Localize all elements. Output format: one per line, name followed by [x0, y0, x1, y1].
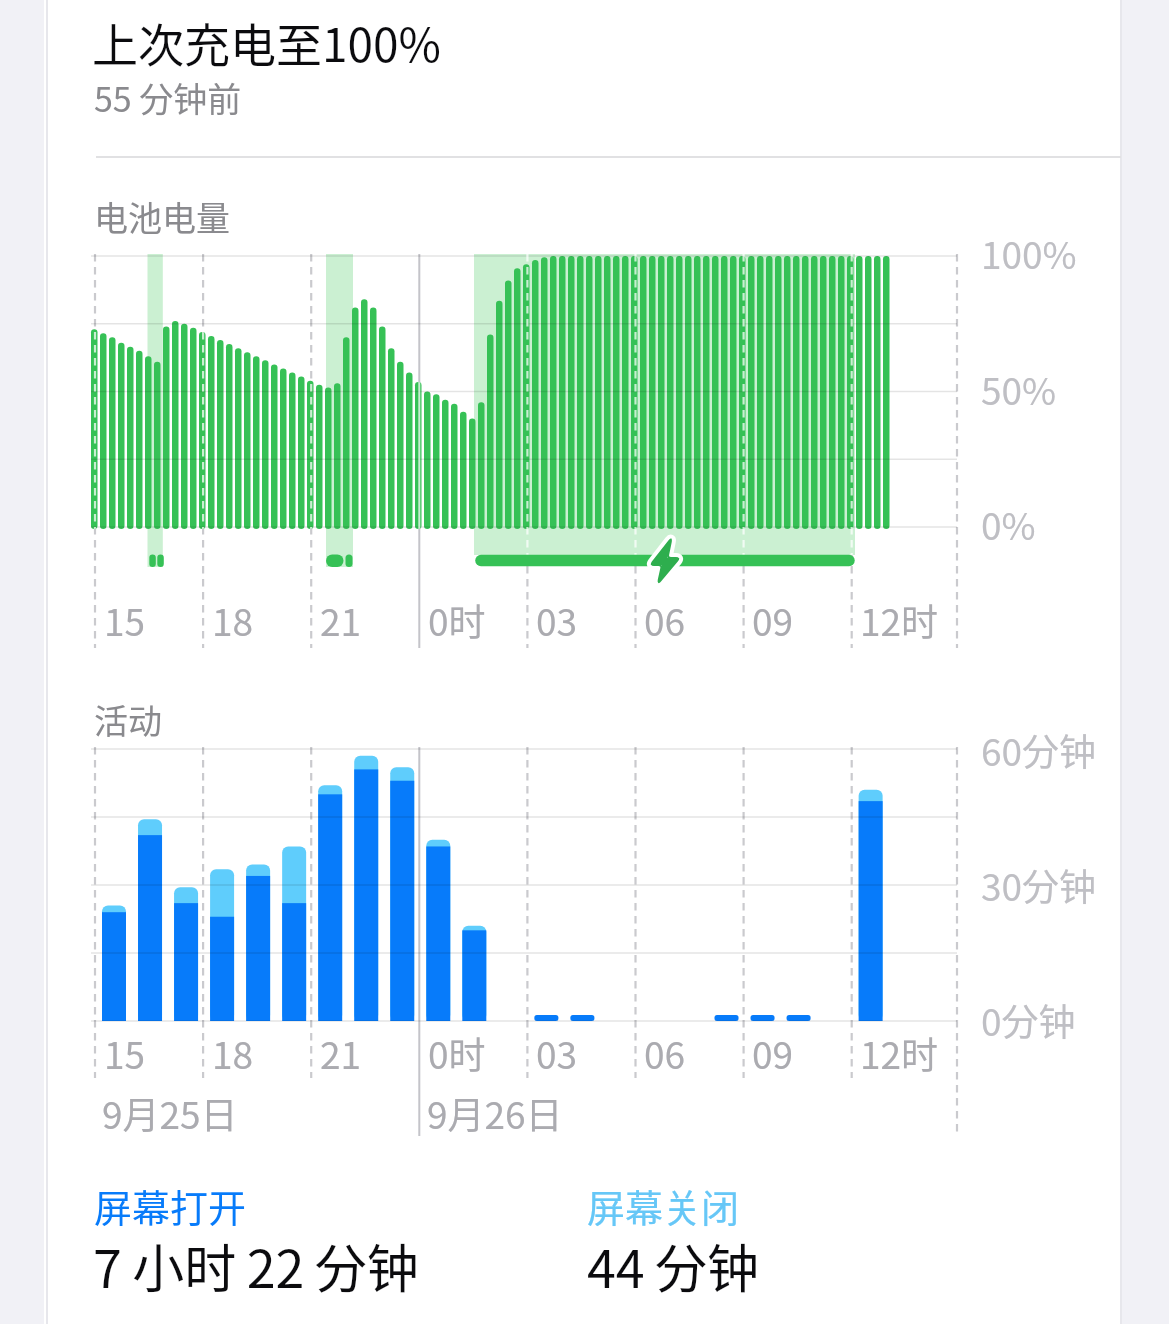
staticText: 18: [212, 593, 254, 647]
staticText: 9月25日: [102, 1086, 238, 1140]
staticText: 03: [536, 593, 578, 647]
staticText: 100%: [981, 226, 1077, 280]
staticText: 55 分钟前: [94, 73, 242, 122]
staticText: 活动: [94, 695, 162, 744]
staticText: 06: [644, 593, 686, 647]
staticText: 50%: [981, 362, 1057, 416]
staticText: 0分钟: [981, 993, 1076, 1047]
button[interactable]: 屏幕关闭: [587, 1178, 740, 1233]
staticText: 06: [644, 1026, 686, 1080]
staticText: 21: [320, 593, 362, 647]
staticText: 15: [104, 1026, 146, 1080]
staticText: 0时: [428, 593, 486, 647]
staticText: 03: [536, 1026, 578, 1080]
staticText: 12时: [860, 1026, 939, 1080]
staticText: 9月26日: [427, 1086, 563, 1140]
staticText: 0%: [981, 497, 1036, 551]
staticText: 21: [320, 1026, 362, 1080]
staticText: 7 小时 22 分钟: [93, 1228, 419, 1303]
staticText: 18: [212, 1026, 254, 1080]
staticText: 电池电量: [94, 192, 230, 241]
staticText: 30分钟: [981, 858, 1097, 912]
button[interactable]: 屏幕打开: [94, 1178, 247, 1233]
staticText: 09: [752, 593, 794, 647]
button[interactable]: 上次充电至100%: [92, 9, 441, 76]
staticText: 60分钟: [981, 723, 1097, 777]
staticText: 15: [104, 593, 146, 647]
staticText: 12时: [860, 593, 939, 647]
staticText: 44 分钟: [587, 1228, 760, 1303]
staticText: 09: [752, 1026, 794, 1080]
staticText: 0时: [428, 1026, 486, 1080]
